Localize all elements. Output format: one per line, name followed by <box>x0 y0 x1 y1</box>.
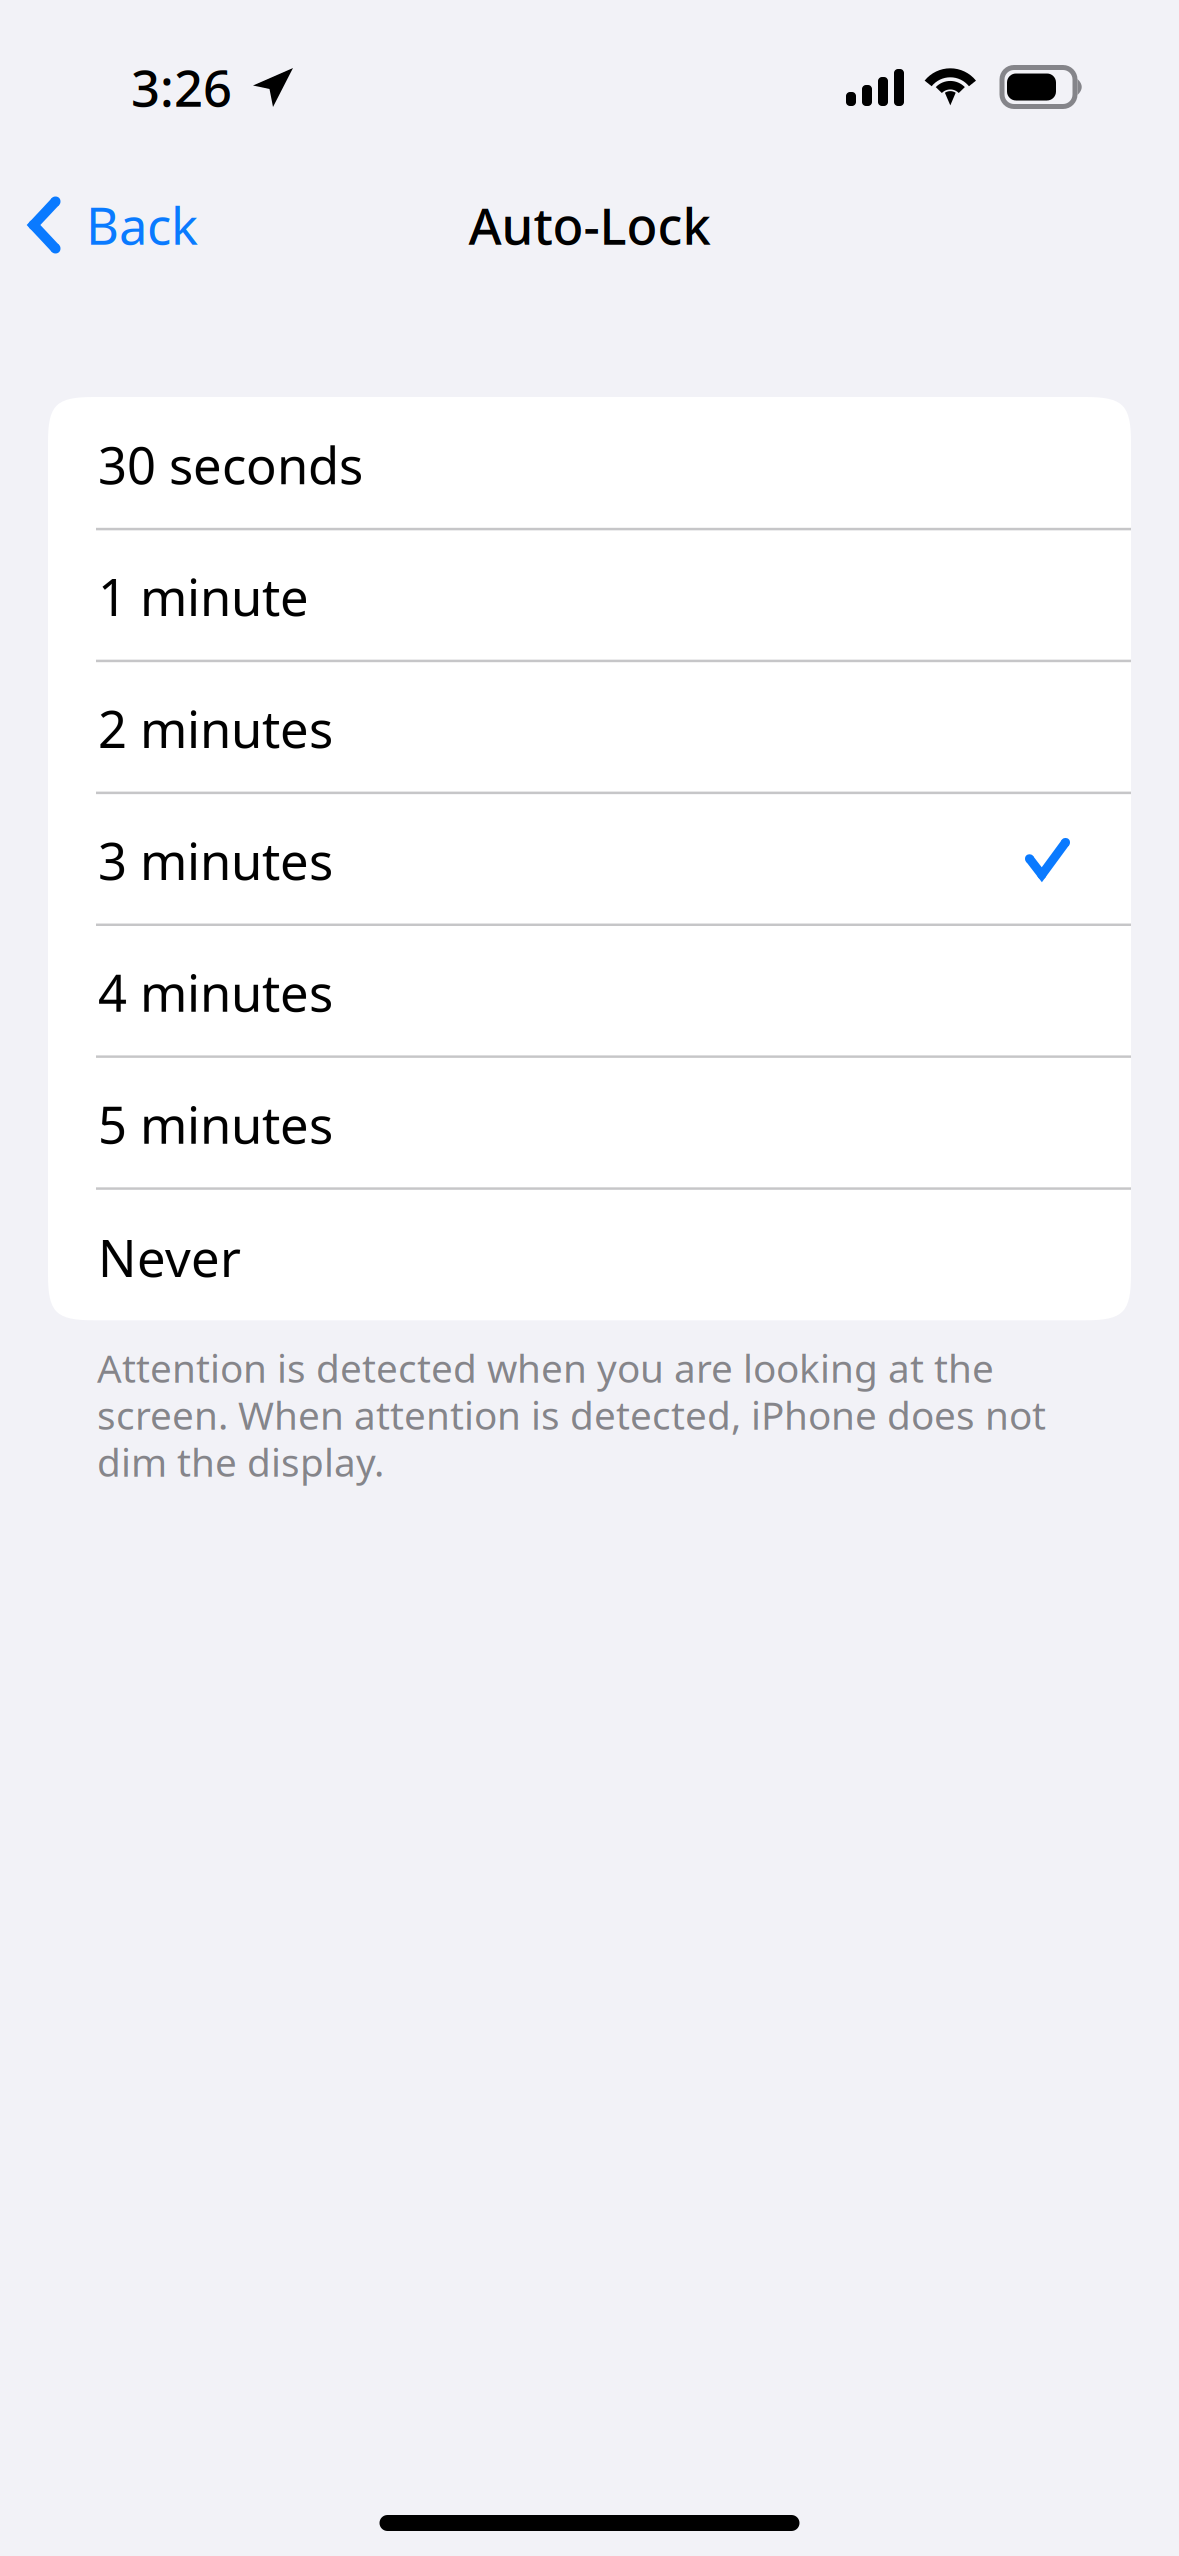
staticText: 4 minutes <box>98 958 333 1026</box>
button[interactable]: Back <box>0 173 222 277</box>
staticText: Attention is detected when you are looki… <box>97 1342 994 1393</box>
staticText: 3:26 <box>131 53 232 121</box>
staticText: 3 minutes <box>98 827 333 894</box>
staticText: 5 minutes <box>98 1090 333 1158</box>
staticText: Never <box>98 1224 241 1291</box>
staticText: Auto-Lock <box>468 191 710 259</box>
staticText: 2 minutes <box>98 695 333 762</box>
button[interactable]: Never <box>48 1188 1131 1320</box>
button[interactable]: 5 minutes <box>48 1056 1131 1188</box>
staticText: screen. When attention is detected, iPho… <box>97 1389 1046 1440</box>
button[interactable]: 3 minutes <box>48 793 1131 925</box>
staticText: 1 minute <box>98 563 309 630</box>
staticText: Back <box>86 191 198 259</box>
button[interactable]: 30 seconds <box>48 397 1131 529</box>
button[interactable]: 1 minute <box>48 529 1131 661</box>
staticText: dim the display. <box>97 1436 384 1487</box>
staticText: 30 seconds <box>98 431 363 498</box>
button[interactable]: 4 minutes <box>48 925 1131 1056</box>
button[interactable]: 2 minutes <box>48 661 1131 793</box>
